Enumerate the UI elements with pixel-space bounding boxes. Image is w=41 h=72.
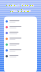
button[interactable] <box>4 24 37 30</box>
staticText: you please <box>10 8 30 13</box>
button[interactable] <box>4 36 37 42</box>
button[interactable] <box>4 42 37 47</box>
button[interactable] <box>4 47 37 53</box>
button[interactable] <box>4 53 37 59</box>
button[interactable] <box>4 18 37 24</box>
button[interactable] <box>4 30 37 36</box>
staticText: Collect files as <box>7 2 34 8</box>
